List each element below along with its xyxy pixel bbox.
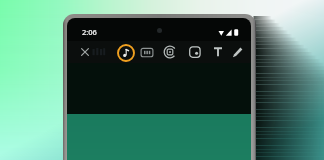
staticText: 2:06 <box>82 27 97 37</box>
button[interactable]: GIF <box>139 44 155 60</box>
button[interactable]: Close <box>77 44 93 60</box>
button[interactable]: Draw <box>230 44 246 60</box>
button[interactable]: Music <box>117 44 135 62</box>
button[interactable]: Stickers <box>162 44 178 60</box>
button[interactable]: Text <box>210 44 226 60</box>
button[interactable]: Cutout <box>187 44 203 60</box>
button[interactable]: Camera <box>91 44 107 60</box>
